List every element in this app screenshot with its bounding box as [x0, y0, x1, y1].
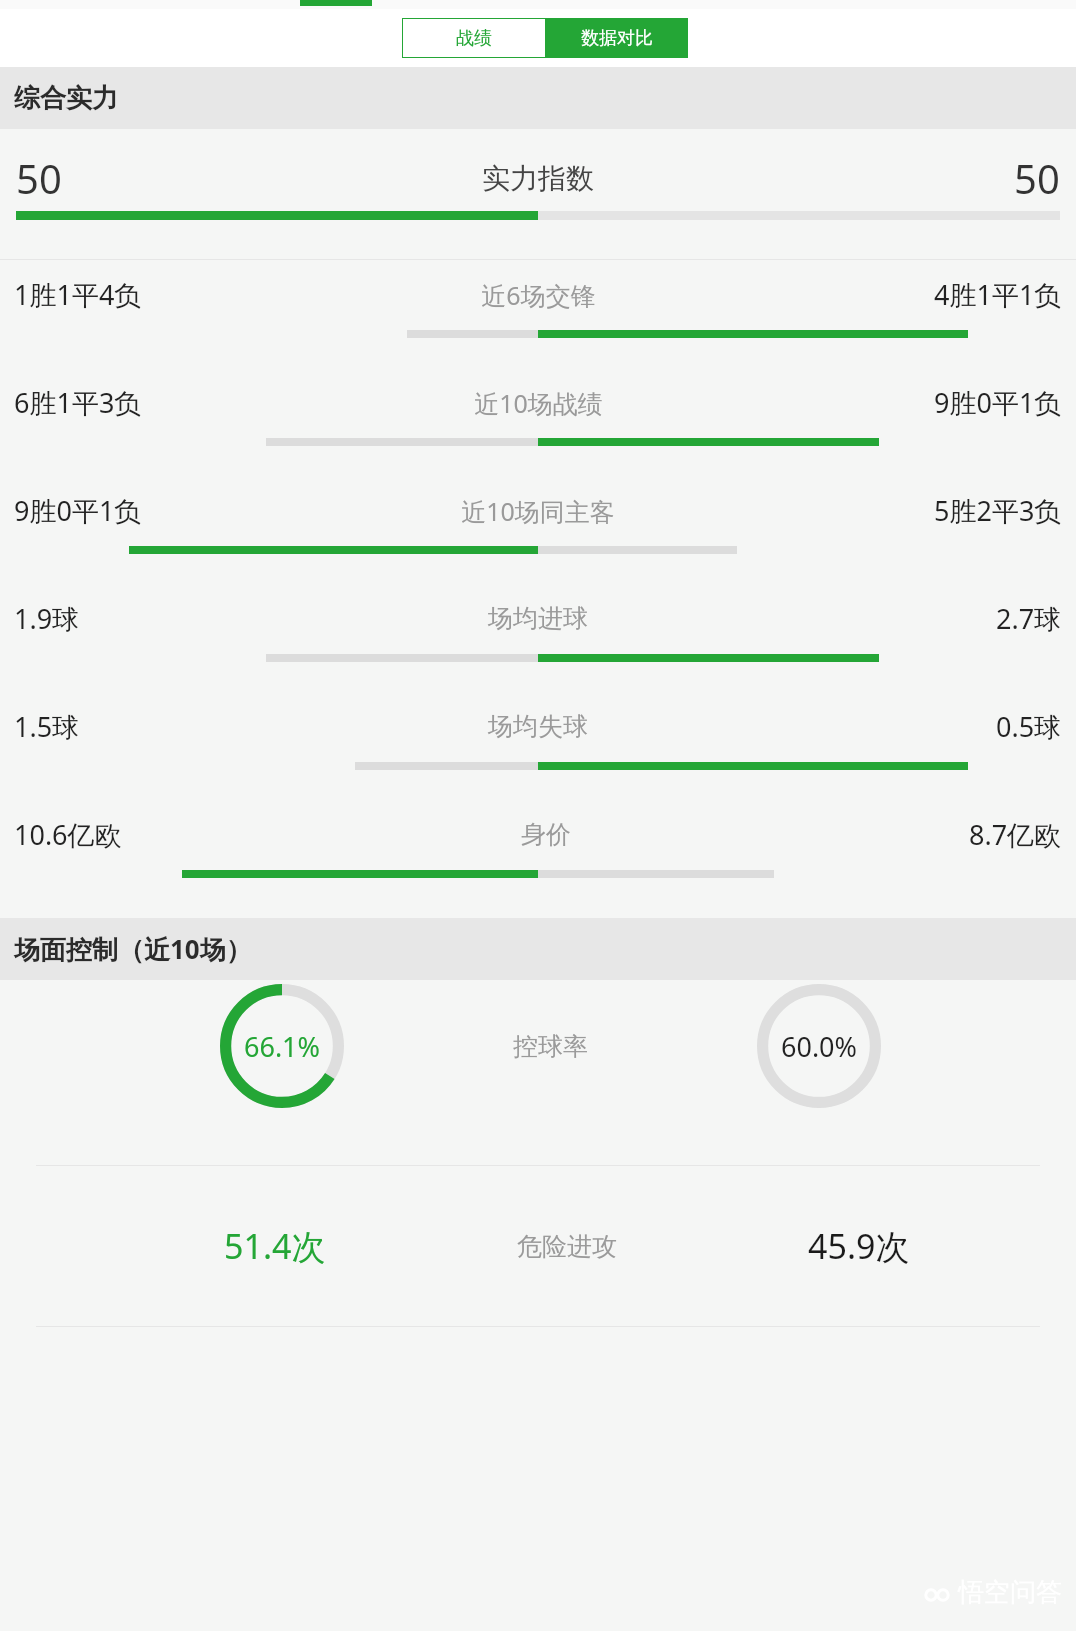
staticText: 综合实力 [14, 82, 118, 115]
staticText: 50 [1014, 151, 1060, 205]
staticText: 8.7亿欧 [969, 816, 1062, 853]
button[interactable]: 数据对比 [545, 18, 688, 58]
button[interactable]: 6胜1平3负 [0, 368, 1076, 476]
button[interactable]: 1胜1平4负 [0, 260, 1076, 368]
staticText: 战绩 [456, 27, 492, 50]
staticText: 控球率 [513, 1031, 588, 1062]
staticText: 50 [16, 151, 62, 205]
button[interactable]: 战绩 [402, 18, 545, 58]
staticText: 危险进攻 [517, 1231, 617, 1262]
staticText: 场均进球 [488, 603, 588, 634]
button[interactable]: 10.6亿欧 [0, 800, 1076, 908]
button[interactable]: 9胜0平1负 [0, 476, 1076, 584]
staticText: 45.9次 [808, 1223, 910, 1269]
staticText: 9胜0平1负 [14, 492, 142, 529]
staticText: 6胜1平3负 [14, 384, 142, 421]
staticText: 5胜2平3负 [934, 492, 1062, 529]
staticText: 9胜0平1负 [934, 384, 1062, 421]
staticText: 数据对比 [581, 27, 653, 50]
staticText: 0.5球 [996, 708, 1062, 745]
staticText: 66.1% [244, 1028, 321, 1065]
staticText: 悟空问答 [958, 1576, 1062, 1609]
staticText: 近10场同主客 [461, 494, 615, 528]
staticText: 4胜1平1负 [934, 276, 1062, 313]
staticText: 51.4次 [224, 1223, 326, 1269]
staticText: 场均失球 [488, 711, 588, 742]
staticText: 实力指数 [482, 161, 594, 196]
staticText: 1.9球 [14, 600, 80, 637]
staticText: 1.5球 [14, 708, 80, 745]
staticText: 场面控制（近10场） [14, 931, 252, 967]
staticText: 60.0% [781, 1028, 858, 1065]
staticText: 1胜1平4负 [14, 276, 142, 313]
staticText: 10.6亿欧 [14, 816, 122, 853]
staticText: 身价 [521, 819, 571, 850]
button[interactable]: 1.5球 [0, 692, 1076, 800]
staticText: 近10场战绩 [474, 386, 603, 420]
staticText: 2.7球 [996, 600, 1062, 637]
button[interactable]: 1.9球 [0, 584, 1076, 692]
staticText: 近6场交锋 [481, 278, 596, 312]
